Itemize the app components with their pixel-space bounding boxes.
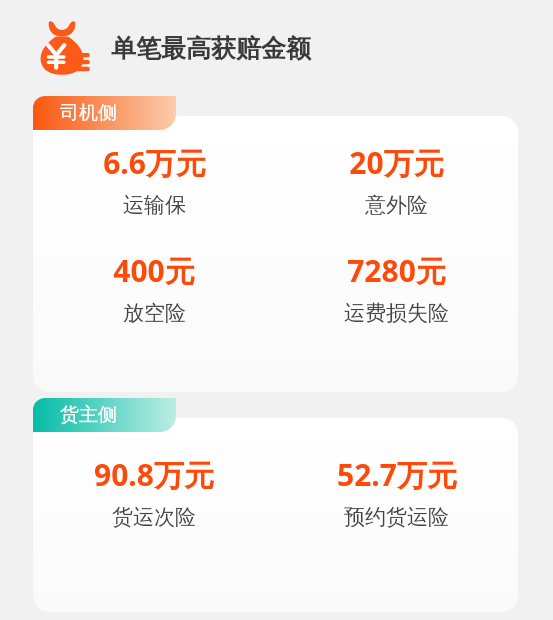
button[interactable]: 7280元	[275, 250, 518, 326]
button[interactable]: 20万元	[275, 142, 518, 218]
staticText: 52.7万元	[337, 454, 457, 495]
staticText: 20万元	[349, 142, 444, 183]
staticText: 7280元	[347, 250, 446, 291]
staticText: 货运次险	[112, 504, 196, 530]
button[interactable]: 90.8万元	[33, 454, 275, 530]
button[interactable]: 6.6万元	[33, 116, 518, 392]
staticText: 货主侧	[60, 403, 117, 427]
staticText: 400元	[113, 250, 195, 291]
staticText: 6.6万元	[103, 142, 206, 183]
staticText: 意外险	[365, 192, 428, 218]
other: Money bag	[33, 19, 91, 77]
staticText: 运输保	[123, 192, 186, 218]
staticText: 运费损失险	[344, 300, 449, 326]
button[interactable]: 400元	[33, 250, 275, 326]
button[interactable]: 52.7万元	[275, 454, 518, 530]
staticText: 90.8万元	[94, 454, 214, 495]
staticText: 预约货运险	[344, 504, 449, 530]
staticText: 司机侧	[60, 101, 117, 125]
button[interactable]: 6.6万元	[33, 142, 275, 218]
button[interactable]: 货主侧	[33, 398, 176, 432]
staticText: 放空险	[123, 300, 186, 326]
button[interactable]: 司机侧	[33, 96, 176, 130]
button[interactable]: 90.8万元	[33, 418, 518, 612]
staticText: 单笔最高获赔金额	[111, 33, 311, 64]
